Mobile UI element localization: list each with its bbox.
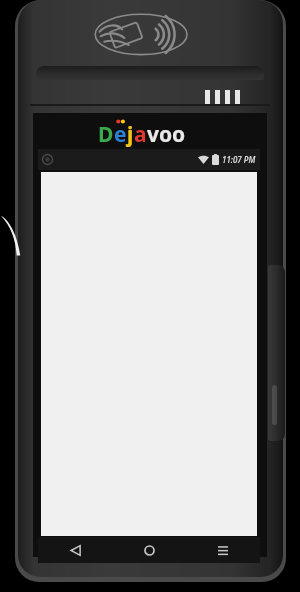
staticText: a [134, 120, 147, 149]
button[interactable]: Home [112, 537, 186, 563]
button[interactable]: Back [38, 537, 112, 563]
button[interactable]: Side button [268, 265, 285, 441]
staticText: voo [147, 120, 186, 149]
other: Contactless payment [84, 7, 196, 63]
staticText: j [127, 120, 134, 149]
staticText: 11:07 PM [222, 154, 256, 165]
staticText: D [98, 120, 114, 149]
staticText: e [114, 120, 127, 149]
button[interactable]: Recent apps [186, 537, 260, 563]
